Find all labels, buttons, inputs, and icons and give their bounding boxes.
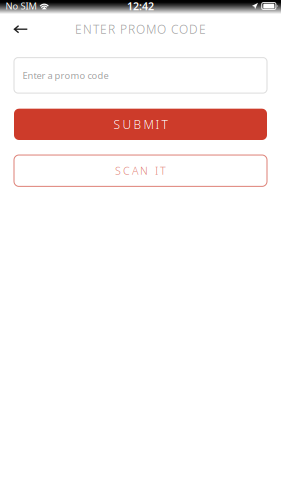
staticText: Enter a promo code (22, 69, 108, 82)
staticText: S U B M I T (113, 116, 167, 132)
staticText: No SIM (5, 0, 36, 12)
staticText: 12:42 (127, 0, 154, 13)
button[interactable]: Back (0, 16, 42, 44)
button[interactable]: S U B M I T (14, 109, 267, 140)
staticText: E N T E R P R O M O C O D E (75, 21, 206, 37)
staticText: S C A N I T (115, 164, 166, 178)
button[interactable]: S C A N I T (14, 155, 267, 186)
